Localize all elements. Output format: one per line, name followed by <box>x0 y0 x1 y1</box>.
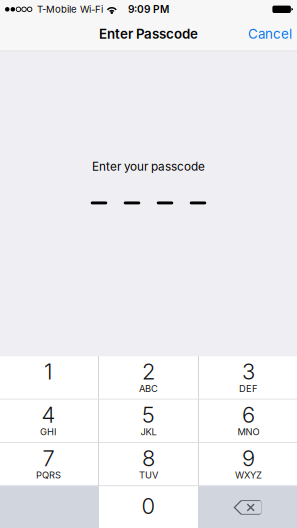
staticText: WXYZ <box>235 469 262 481</box>
staticText: 2 <box>142 358 155 385</box>
button[interactable]: Cancel <box>243 18 297 50</box>
staticText: DEF <box>239 383 258 394</box>
staticText: Enter Passcode <box>99 26 198 42</box>
staticText: TUV <box>139 469 158 481</box>
staticText: 8 <box>142 445 155 471</box>
button[interactable]: 6 <box>199 400 297 442</box>
staticText: 6 <box>242 401 255 428</box>
button[interactable]: 1 <box>0 356 98 399</box>
button[interactable]: 7 <box>0 443 98 485</box>
button[interactable]: 9 <box>199 443 297 485</box>
button[interactable]: 5 <box>99 400 198 442</box>
staticText: MNO <box>237 426 259 437</box>
staticText: GHI <box>40 426 57 437</box>
staticText: Enter your passcode <box>92 159 205 173</box>
staticText: T-Mobile Wi-Fi <box>37 3 103 15</box>
staticText: 9:09 PM <box>128 3 169 15</box>
staticText: ABC <box>139 383 158 394</box>
staticText: 9 <box>242 445 255 471</box>
staticText: 7 <box>42 445 54 471</box>
button[interactable]: 3 <box>199 356 297 399</box>
staticText: 0 <box>141 493 155 519</box>
staticText: Cancel <box>248 26 292 42</box>
button[interactable]: 0 <box>99 486 198 528</box>
button[interactable]: 2 <box>99 356 198 399</box>
button[interactable]: 8 <box>99 443 198 485</box>
staticText: PQRS <box>36 469 61 481</box>
button[interactable]: 4 <box>0 400 98 442</box>
staticText: JKL <box>140 426 156 437</box>
staticText: 5 <box>142 401 155 428</box>
button[interactable]: Delete <box>198 486 297 528</box>
staticText: 4 <box>41 401 55 428</box>
staticText: 3 <box>242 358 255 385</box>
staticText: 1 <box>44 358 53 385</box>
